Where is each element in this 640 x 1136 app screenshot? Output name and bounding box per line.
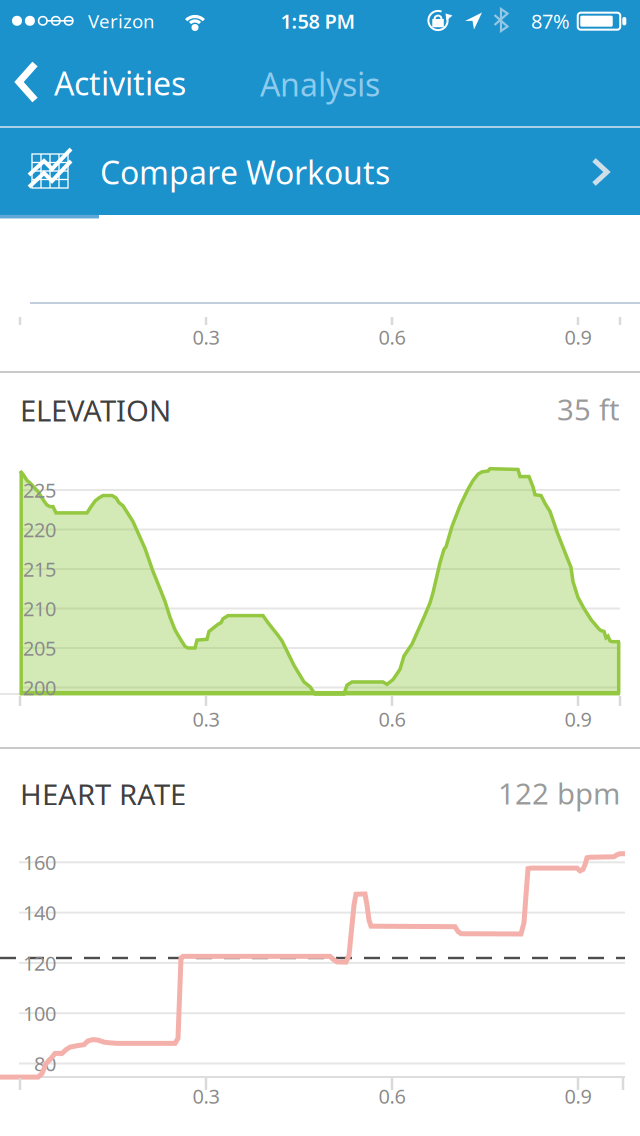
staticText: Analysis: [260, 63, 380, 105]
staticText: 200: [23, 674, 56, 701]
staticText: 140: [23, 899, 56, 926]
staticText: 0.6: [378, 706, 405, 732]
staticText: 122 bpm: [498, 773, 620, 812]
staticText: 215: [23, 556, 56, 582]
staticText: HEART RATE: [20, 774, 186, 813]
staticText: Compare Workouts: [100, 151, 390, 193]
staticText: 0.9: [564, 324, 591, 350]
button[interactable]: Activities: [5, 40, 225, 126]
staticText: 0.9: [564, 1083, 591, 1109]
staticText: 87%: [531, 8, 570, 34]
staticText: Activities: [54, 62, 186, 104]
staticText: 210: [23, 595, 56, 622]
staticText: 0.6: [378, 1083, 405, 1109]
staticText: Verizon: [88, 9, 155, 33]
button[interactable]: Compare Workouts: [0, 128, 640, 215]
staticText: 80: [34, 1050, 56, 1077]
staticText: 205: [23, 635, 56, 661]
staticText: 120: [23, 950, 56, 976]
staticText: 1:58 PM: [280, 8, 355, 34]
staticText: 160: [23, 849, 56, 876]
staticText: 35 ft: [557, 389, 620, 428]
staticText: 0.9: [564, 706, 591, 732]
staticText: 220: [23, 516, 56, 543]
staticText: 225: [23, 477, 56, 503]
staticText: ELEVATION: [20, 390, 171, 429]
staticText: 0.3: [192, 1083, 219, 1109]
staticText: 0.3: [192, 706, 219, 732]
staticText: 100: [23, 1000, 56, 1026]
staticText: 0.3: [192, 324, 219, 350]
staticText: 0.6: [378, 324, 405, 350]
